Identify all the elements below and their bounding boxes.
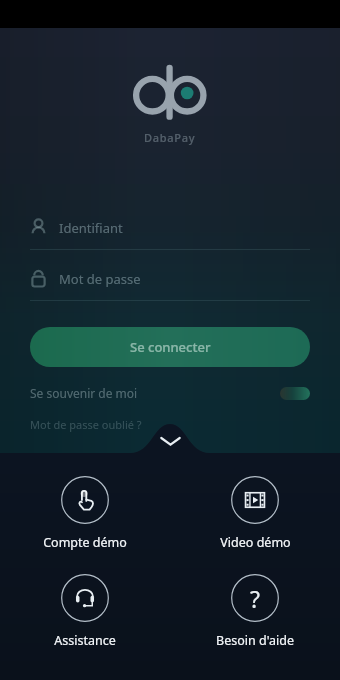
staticText: DabaPay	[144, 130, 196, 145]
button[interactable]: Compte démo	[0, 476, 170, 551]
staticText: Mot de passe	[59, 270, 141, 288]
staticText: Compte démo	[43, 534, 127, 551]
button[interactable]: Mot de passe	[30, 269, 310, 301]
staticText: Assistance	[54, 632, 116, 649]
button[interactable]: Fermer le panneau	[0, 428, 340, 454]
staticText: Se connecter	[130, 338, 211, 356]
button[interactable]: Se connecter	[30, 327, 310, 367]
button[interactable]: ?	[170, 574, 340, 649]
staticText: Video démo	[220, 534, 291, 551]
button[interactable]: Video démo	[170, 476, 340, 551]
staticText: ?	[250, 583, 260, 614]
button[interactable]: Se souvenir de moi	[30, 385, 310, 401]
staticText: Identifiant	[59, 219, 123, 237]
button[interactable]: Identifiant	[30, 218, 310, 250]
staticText: Mot de passe oublié ?	[30, 417, 142, 432]
staticText: Se souvenir de moi	[30, 385, 138, 401]
staticText: Besoin d'aide	[216, 632, 294, 649]
button[interactable]: Assistance	[0, 574, 170, 649]
